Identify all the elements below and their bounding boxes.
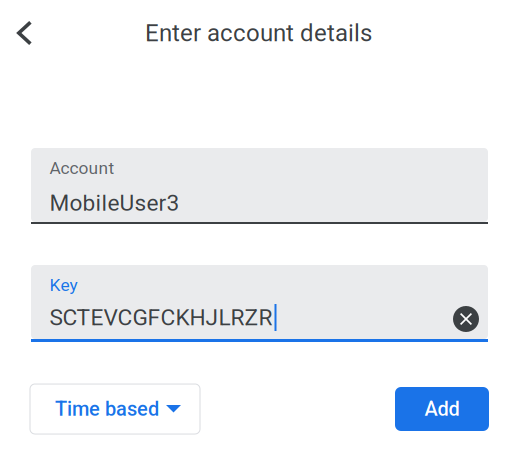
button[interactable]: Account xyxy=(31,148,488,224)
button[interactable]: Back xyxy=(0,0,46,66)
staticText: MobileUser3 xyxy=(49,190,179,216)
staticText: Add xyxy=(424,397,459,421)
button[interactable]: Time based xyxy=(30,384,200,434)
staticText: Enter account details xyxy=(145,19,372,47)
staticText: Time based xyxy=(55,397,159,421)
button[interactable]: Key xyxy=(31,265,488,342)
button[interactable]: Add xyxy=(395,387,489,431)
staticText: Account xyxy=(49,158,114,178)
button[interactable]: Clear key xyxy=(453,272,488,335)
staticText: SCTEVCGFCKHJLRZR xyxy=(49,304,272,331)
staticText: Key xyxy=(49,275,77,295)
